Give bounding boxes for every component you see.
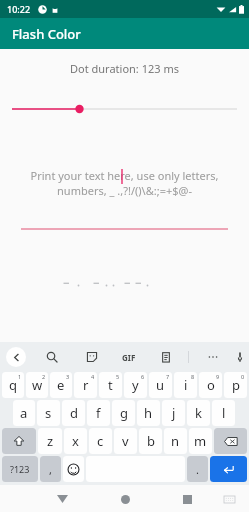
button[interactable]: a — [13, 400, 35, 426]
staticText: g — [120, 404, 128, 422]
staticText: o — [207, 376, 215, 394]
staticText: a — [20, 404, 28, 422]
button[interactable]: t — [99, 372, 122, 398]
button[interactable]: Back — [6, 347, 26, 367]
staticText: Print your text here, use only letters, … — [18, 168, 231, 198]
button[interactable]: Emoji — [63, 456, 84, 482]
button[interactable]: Search — [42, 347, 62, 367]
staticText: e — [57, 376, 65, 394]
button[interactable]: w — [26, 372, 48, 398]
staticText: Flash Color — [12, 25, 81, 43]
staticText: s — [45, 404, 52, 422]
staticText: ?123 — [10, 463, 30, 475]
staticText: 10:22 — [7, 3, 31, 15]
staticText: b — [147, 432, 155, 450]
button[interactable]: q — [2, 372, 24, 398]
button[interactable]: c — [89, 428, 112, 454]
button[interactable]: Enter — [210, 456, 247, 482]
button[interactable]: x — [64, 428, 87, 454]
button[interactable]: Shift — [2, 428, 36, 454]
button[interactable]: s — [37, 400, 60, 426]
staticText: , — [49, 462, 52, 477]
button[interactable]: . — [187, 456, 208, 482]
staticText: k — [195, 404, 202, 422]
button[interactable]: m — [189, 428, 212, 454]
staticText: d — [70, 404, 78, 422]
staticText: j — [172, 404, 176, 422]
button[interactable]: n — [164, 428, 187, 454]
button[interactable]: GIF — [122, 352, 136, 363]
staticText: u — [156, 376, 165, 394]
button[interactable]: f — [87, 400, 110, 426]
button[interactable]: z — [38, 428, 62, 454]
staticText: c — [97, 432, 104, 450]
staticText: r — [83, 376, 89, 394]
staticText: l — [222, 404, 226, 422]
button[interactable]: k — [187, 400, 210, 426]
staticText: p — [232, 376, 240, 394]
staticText: x — [72, 432, 79, 450]
staticText: t — [108, 376, 113, 394]
staticText: 0 — [241, 373, 245, 380]
staticText: q — [9, 376, 17, 394]
button[interactable]: More options — [203, 347, 223, 367]
button[interactable]: l — [212, 400, 235, 426]
button[interactable]: g — [112, 400, 135, 426]
button[interactable] — [0, 98, 249, 120]
button[interactable]: Print your text here, use only letters, … — [0, 168, 249, 230]
staticText: h — [144, 404, 153, 422]
staticText: f — [96, 404, 101, 422]
staticText: i — [184, 376, 188, 394]
button[interactable]: Home — [115, 489, 135, 509]
staticText: 1 — [18, 373, 22, 380]
button[interactable]: p — [224, 372, 247, 398]
staticText: z — [47, 432, 54, 450]
button[interactable]: ?123 — [2, 456, 38, 482]
button[interactable]: j — [162, 400, 185, 426]
staticText: y — [132, 376, 139, 394]
staticText: . — [196, 462, 199, 477]
staticText: 4 — [91, 373, 95, 380]
button[interactable]: , — [40, 456, 61, 482]
button[interactable]: h — [137, 400, 160, 426]
button[interactable]: y — [124, 372, 147, 398]
staticText: 5 — [116, 373, 120, 380]
staticText: v — [122, 432, 129, 450]
staticText: 2 — [42, 373, 46, 380]
staticText: w — [32, 376, 43, 394]
button[interactable]: o — [199, 372, 222, 398]
button[interactable]: Recent apps — [177, 489, 197, 509]
button[interactable]: Back — [52, 489, 72, 509]
button[interactable]: d — [62, 400, 85, 426]
staticText: Dot duration: 123 ms — [0, 61, 249, 76]
staticText: m — [194, 432, 207, 450]
button[interactable]: i — [174, 372, 197, 398]
button[interactable]: v — [114, 428, 137, 454]
staticText: 3 — [66, 373, 70, 380]
staticText: 8 — [191, 373, 195, 380]
staticText: 6 — [141, 373, 145, 380]
button[interactable]: Clipboard — [156, 347, 176, 367]
button[interactable]: Backspace — [214, 428, 247, 454]
button[interactable]: e — [50, 372, 72, 398]
button[interactable]: r — [74, 372, 97, 398]
staticText: 7 — [166, 373, 170, 380]
staticText: n — [171, 432, 180, 450]
button[interactable]: u — [149, 372, 172, 398]
button[interactable]: b — [139, 428, 162, 454]
staticText: 9 — [216, 373, 220, 380]
button[interactable]: Stickers — [82, 347, 102, 367]
button[interactable]: Voice input — [237, 347, 243, 367]
